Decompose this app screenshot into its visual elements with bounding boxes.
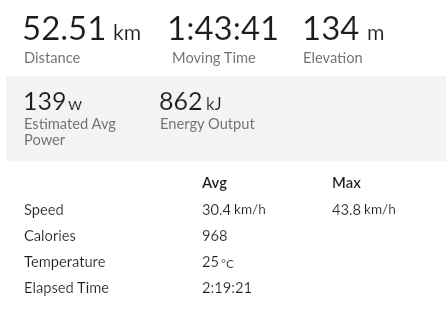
staticText: km/h [364, 201, 396, 217]
staticText: 134 [302, 7, 360, 47]
staticText: Calories [24, 226, 76, 244]
button[interactable] [152, 4, 294, 72]
staticText: Elevation [303, 48, 363, 66]
staticText: m [367, 19, 385, 44]
staticText: 52.51 [22, 7, 107, 47]
staticText: Distance [24, 48, 81, 66]
staticText: km [113, 19, 142, 44]
staticText: 139 [23, 85, 67, 115]
staticText: 968 [202, 226, 228, 244]
staticText: 2:19:21 [202, 278, 252, 296]
button[interactable] [296, 4, 440, 72]
staticText: km/h [234, 201, 266, 217]
staticText: Estimated Avg Power [24, 114, 116, 148]
staticText: 30.4 [202, 200, 232, 218]
staticText: 43.8 [332, 200, 362, 218]
button[interactable] [6, 273, 440, 300]
button[interactable] [152, 80, 294, 156]
button[interactable] [6, 80, 148, 156]
staticText: 862 [159, 85, 203, 115]
staticText: Moving Time [172, 48, 256, 66]
staticText: °C [221, 256, 234, 270]
staticText: Energy Output [160, 114, 255, 132]
staticText: Temperature [24, 252, 106, 270]
button[interactable] [6, 195, 440, 221]
staticText: Elapsed Time [24, 278, 110, 296]
staticText: Max [332, 173, 361, 191]
staticText: Avg [202, 173, 227, 191]
staticText: kJ [206, 93, 222, 113]
staticText: 25 [202, 252, 220, 270]
staticText: 1:43:41 [167, 7, 280, 47]
staticText: Speed [24, 200, 64, 218]
staticText: w [68, 92, 83, 114]
button[interactable] [6, 4, 148, 72]
button[interactable] [6, 247, 440, 273]
button[interactable] [6, 221, 440, 247]
